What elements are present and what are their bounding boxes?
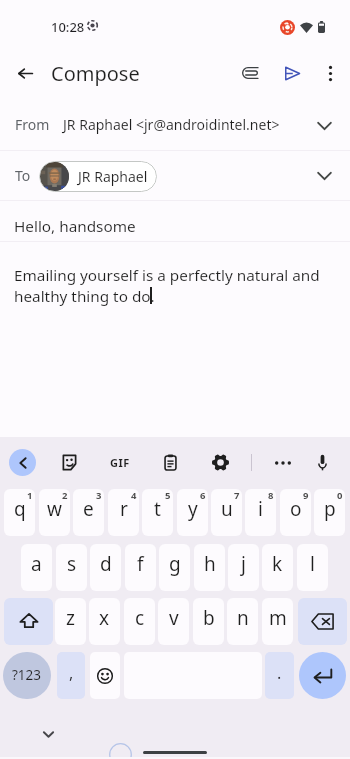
button[interactable]: k (262, 544, 293, 591)
staticText: d (100, 551, 112, 577)
staticText: u (221, 496, 233, 522)
staticText: 5 (165, 489, 171, 502)
staticText: JR Raphael (78, 167, 148, 186)
staticText: k (272, 551, 283, 577)
button[interactable]: Shift (4, 598, 53, 645)
button[interactable]: x (89, 598, 120, 645)
button[interactable]: w (39, 489, 70, 536)
button[interactable]: Previous (9, 449, 36, 476)
staticText: Hello, handsome (14, 216, 136, 237)
staticText: z (66, 605, 75, 631)
staticText: j (241, 551, 246, 577)
staticText: a (31, 551, 42, 577)
button[interactable]: Settings (207, 449, 233, 475)
button[interactable]: Hide keyboard (36, 722, 60, 746)
staticText: y (188, 496, 198, 522)
staticText: 0 (337, 489, 343, 502)
button[interactable]: Hello, handsome (0, 201, 350, 242)
staticText: r (120, 496, 128, 522)
button[interactable]: d (90, 544, 121, 591)
staticText: 6 (200, 489, 206, 502)
button[interactable]: n (227, 598, 258, 645)
staticText: GIF (110, 455, 130, 470)
button[interactable]: f (125, 544, 156, 591)
button[interactable]: Send (272, 53, 312, 93)
button[interactable]: Clipboard (157, 449, 183, 475)
staticText: 8 (268, 489, 274, 502)
button[interactable]: r (108, 489, 139, 536)
button[interactable]: p (314, 489, 345, 536)
button[interactable]: Attach file (230, 53, 270, 93)
button[interactable]: u (211, 489, 242, 536)
button[interactable]: More options (310, 53, 350, 93)
staticText: 4 (131, 489, 137, 502)
staticText: 1 (27, 489, 33, 502)
button[interactable]: s (56, 544, 87, 591)
button[interactable]: GIF (107, 450, 132, 475)
button[interactable]: v (158, 598, 189, 645)
button[interactable]: j (228, 544, 259, 591)
staticText: v (169, 605, 179, 631)
staticText: , (69, 662, 74, 684)
staticText: x (99, 605, 110, 631)
button[interactable]: z (55, 598, 86, 645)
staticText: From (15, 115, 50, 134)
button[interactable]: Enter (299, 652, 346, 699)
button[interactable]: Back (5, 53, 45, 93)
staticText: p (324, 496, 336, 522)
staticText: f (137, 551, 144, 577)
staticText: Emailing yourself is a perfectly natural… (14, 265, 334, 307)
button[interactable]: m (262, 598, 293, 645)
staticText: b (203, 605, 215, 631)
staticText: Compose (51, 60, 140, 87)
button[interactable]: b (193, 598, 224, 645)
staticText: JR Raphael <jr@androidintel.net> (63, 115, 280, 134)
button[interactable]: c (124, 598, 155, 645)
staticText: q (14, 496, 26, 522)
button[interactable]: , (57, 652, 85, 699)
staticText: . (277, 662, 282, 684)
button[interactable]: q (4, 489, 35, 536)
staticText: w (47, 496, 62, 522)
button[interactable]: Emoji (90, 652, 120, 699)
staticText: 2 (62, 489, 68, 502)
staticText: 7 (234, 489, 240, 502)
button[interactable]: Emailing yourself is a perfectly natural… (14, 265, 334, 307)
button[interactable]: a (21, 544, 52, 591)
button[interactable]: . (265, 652, 294, 699)
staticText: m (269, 605, 287, 631)
staticText: e (83, 496, 94, 522)
button[interactable]: Stickers (56, 449, 82, 475)
button[interactable]: Symbols (3, 652, 51, 699)
button[interactable]: More (270, 450, 295, 475)
staticText: o (290, 496, 302, 522)
button[interactable]: g (159, 544, 190, 591)
button[interactable]: JR Raphael (39, 161, 157, 192)
button[interactable]: Voice input (309, 449, 335, 475)
button[interactable]: e (73, 489, 104, 536)
staticText: h (204, 551, 216, 577)
staticText: n (237, 605, 249, 631)
button[interactable]: To (0, 151, 350, 201)
button[interactable]: Backspace (298, 598, 347, 645)
staticText: 10:28 (51, 18, 85, 36)
staticText: i (258, 496, 263, 522)
staticText: t (154, 496, 161, 522)
staticText: To (15, 166, 31, 185)
staticText: s (67, 551, 77, 577)
button[interactable]: h (194, 544, 225, 591)
staticText: l (310, 551, 315, 577)
button[interactable]: i (245, 489, 276, 536)
button[interactable]: y (177, 489, 208, 536)
staticText: 3 (96, 489, 102, 502)
button[interactable]: From (0, 100, 350, 151)
staticText: g (169, 551, 181, 577)
staticText: 9 (303, 489, 309, 502)
button[interactable]: l (297, 544, 328, 591)
staticText: ?123 (12, 666, 42, 684)
staticText: c (135, 605, 145, 631)
button[interactable]: o (280, 489, 311, 536)
button[interactable]: t (142, 489, 173, 536)
